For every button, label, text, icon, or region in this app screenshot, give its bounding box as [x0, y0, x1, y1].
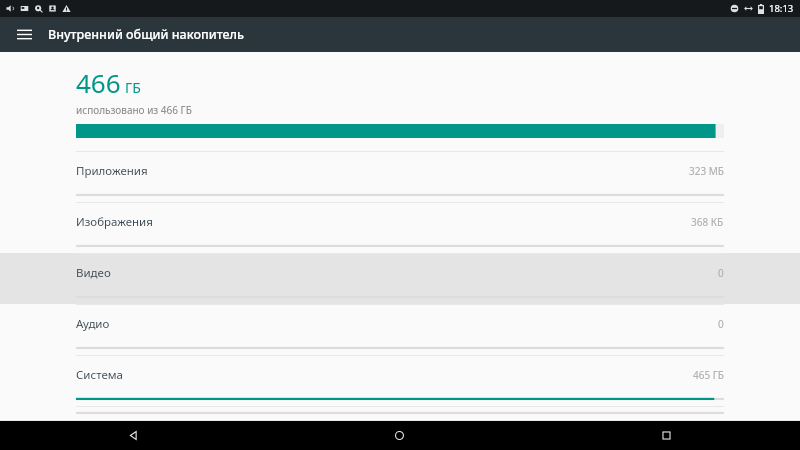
staticText: Изображения [76, 214, 153, 230]
staticText: Приложения [76, 163, 148, 179]
staticText: 368 КБ [691, 215, 724, 229]
staticText: 0 [718, 317, 724, 331]
staticText: 466 [76, 65, 121, 100]
staticText: Внутренний общий накопитель [48, 26, 244, 43]
button[interactable]: Изображения [0, 202, 800, 253]
staticText: 18:13 [769, 2, 794, 15]
staticText: Видео [76, 265, 111, 281]
staticText: 465 ГБ [693, 368, 724, 382]
staticText: Аудио [76, 316, 110, 332]
staticText: ГБ [125, 78, 141, 97]
staticText: Система [76, 367, 123, 383]
button[interactable]: Приложения [0, 151, 800, 202]
button[interactable]: Recent apps [533, 421, 800, 450]
staticText: 0 [718, 266, 724, 280]
button[interactable]: Аудио [0, 304, 800, 355]
button[interactable]: Видео [0, 253, 800, 304]
button[interactable]: Система [0, 355, 800, 406]
button[interactable]: Open navigation menu [0, 17, 48, 52]
staticText: 323 МБ [689, 164, 724, 178]
button[interactable]: Другое [0, 406, 800, 420]
button[interactable]: Home [266, 421, 533, 450]
staticText: использовано из 466 ГБ [76, 103, 192, 117]
button[interactable]: Back [0, 421, 266, 450]
